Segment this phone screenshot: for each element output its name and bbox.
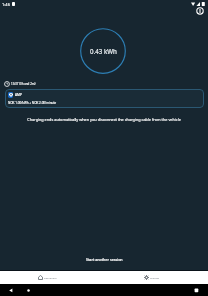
staticText: 1:46 [2, 2, 10, 7]
staticText: Charging ends automatically when you dis… [0, 117, 208, 122]
staticText: AMP [15, 93, 22, 97]
button[interactable]: Dashboard [0, 271, 104, 284]
staticText: 13:37 (0h and 2m) [11, 82, 36, 86]
button[interactable]: Settings [104, 271, 208, 284]
staticText: Dashboard [44, 276, 57, 279]
button[interactable]: Start another session [0, 252, 208, 266]
button[interactable]: Information [194, 5, 206, 17]
staticText: Start another session [86, 257, 123, 262]
staticText: NOK 1.00/kWh + NOK 2.00/minute [8, 101, 57, 105]
staticText: 0.43 kWh [90, 47, 117, 55]
button[interactable]: AMP [5, 89, 204, 108]
staticText: Settings [150, 276, 160, 279]
